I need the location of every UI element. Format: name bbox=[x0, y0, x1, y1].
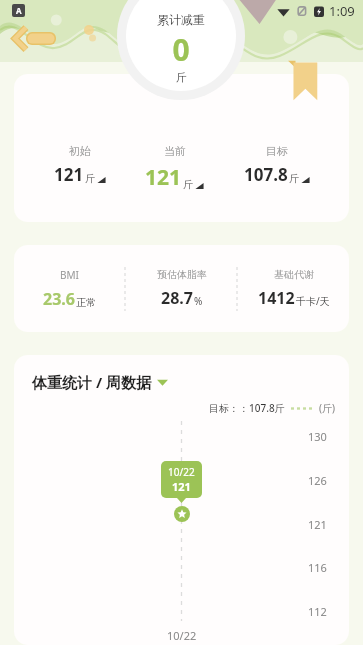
staticText: 121 bbox=[54, 163, 84, 186]
staticText: 斤 bbox=[85, 172, 95, 185]
staticText: 累计减重 bbox=[157, 12, 205, 27]
button[interactable]: Back bbox=[10, 23, 52, 53]
staticText: 预估体脂率 bbox=[157, 268, 207, 281]
staticText: BMI bbox=[60, 268, 79, 282]
staticText: (斤) bbox=[319, 401, 335, 415]
staticText: 正常 bbox=[76, 296, 96, 309]
staticText: 28.7 bbox=[161, 287, 193, 309]
staticText: 130 bbox=[308, 429, 327, 444]
staticText: 0 bbox=[172, 29, 190, 70]
staticText: 121 bbox=[145, 163, 182, 192]
staticText: 斤 bbox=[183, 178, 193, 191]
staticText: 初始 bbox=[69, 144, 91, 158]
staticText: 体重统计 / 周数据 bbox=[32, 372, 152, 392]
staticText: 23.6 bbox=[43, 288, 75, 310]
staticText: 1412 bbox=[258, 287, 295, 309]
staticText: % bbox=[194, 294, 203, 308]
staticText: 斤 bbox=[289, 172, 299, 185]
staticText: A bbox=[16, 5, 22, 16]
staticText: 目标 bbox=[266, 144, 288, 158]
staticText: 107.8 bbox=[244, 163, 288, 186]
button[interactable]: 体重统计 / 周数据 bbox=[32, 372, 168, 392]
staticText: 目标：：107.8斤 bbox=[209, 401, 285, 415]
staticText: 121 bbox=[308, 517, 327, 532]
staticText: 10/22 bbox=[167, 628, 197, 643]
staticText: 126 bbox=[308, 473, 327, 488]
button[interactable]: Bookmark bbox=[286, 58, 320, 102]
button[interactable]: 10/22 bbox=[168, 465, 195, 494]
staticText: 1:09 bbox=[329, 2, 355, 20]
staticText: 当前 bbox=[164, 144, 186, 158]
staticText: 千卡/天 bbox=[296, 294, 330, 308]
staticText: 121 bbox=[172, 479, 191, 494]
button[interactable]: BMI bbox=[14, 245, 349, 332]
staticText: 10/22 bbox=[168, 465, 195, 479]
staticText: 116 bbox=[308, 560, 327, 575]
button[interactable]: 初始 bbox=[14, 74, 349, 222]
staticText: 斤 bbox=[176, 70, 187, 84]
staticText: 112 bbox=[308, 604, 327, 619]
staticText: 基础代谢 bbox=[274, 268, 314, 281]
